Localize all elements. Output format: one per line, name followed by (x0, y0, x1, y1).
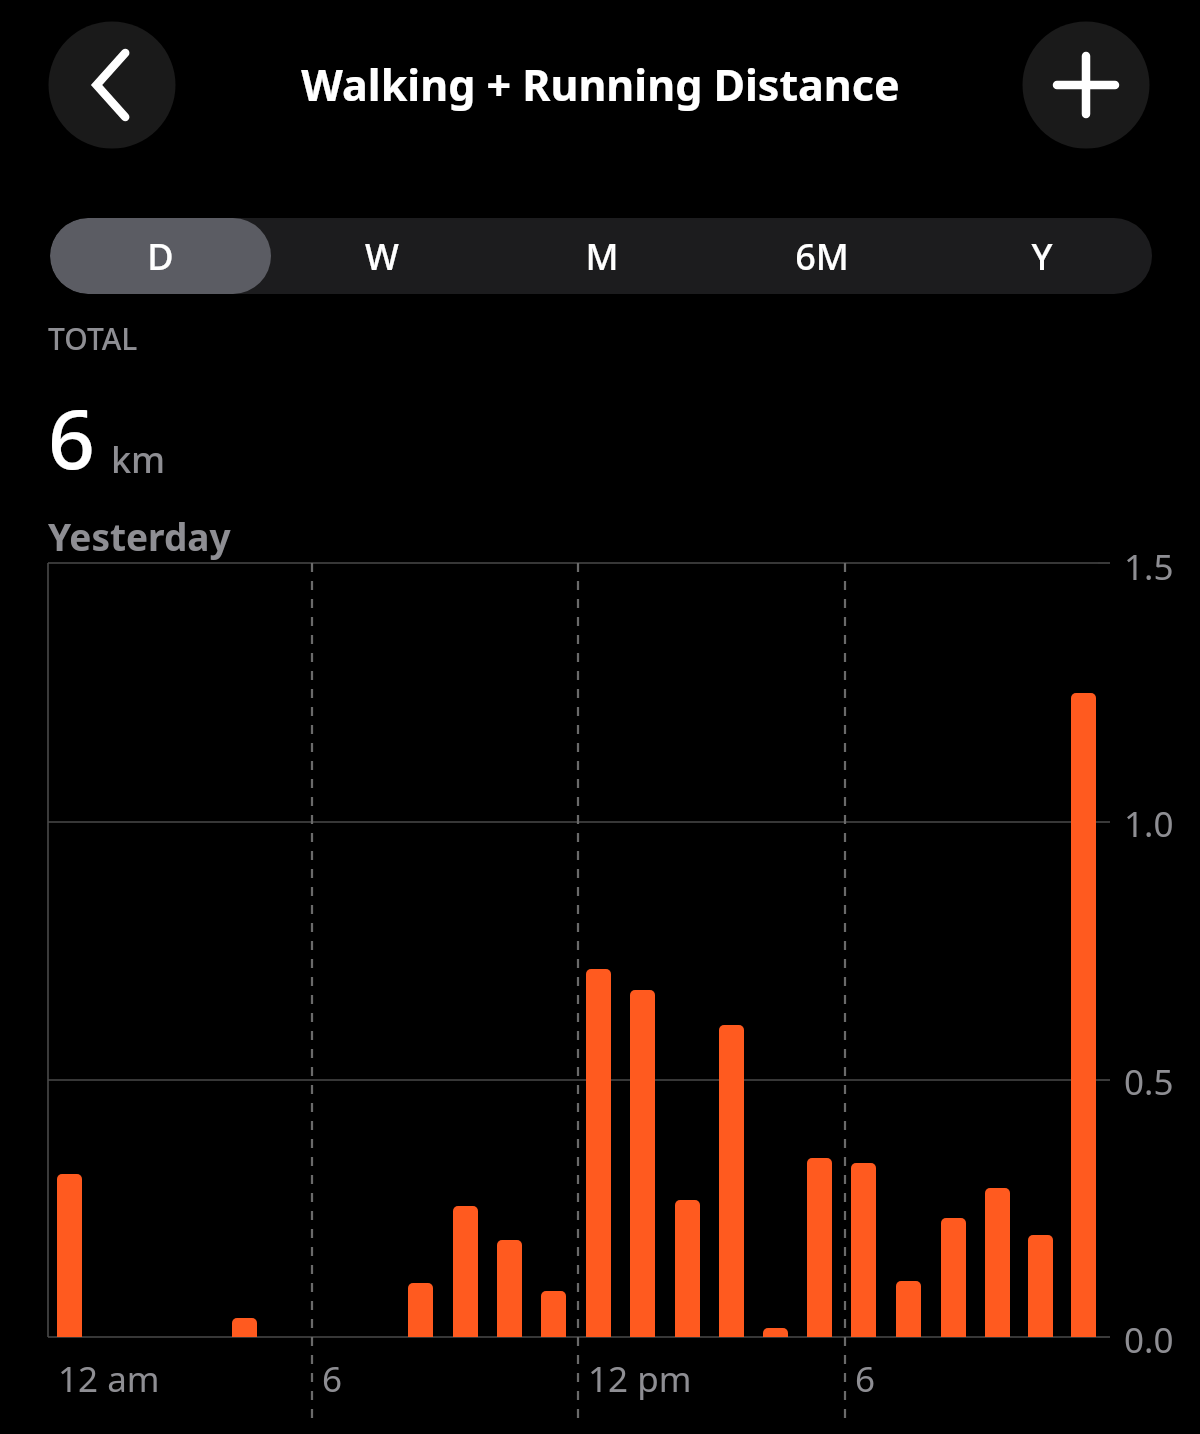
button[interactable]: Y (932, 218, 1152, 294)
staticText: 6 (322, 1355, 343, 1403)
button[interactable]: D (50, 218, 271, 294)
button[interactable]: 6M (712, 218, 932, 294)
staticText: M (585, 232, 619, 281)
staticText: 1.5 (1124, 543, 1174, 591)
staticText: 6M (795, 232, 849, 281)
staticText: TOTAL (48, 318, 138, 359)
staticText: Yesterday (48, 511, 231, 561)
staticText: 6 (855, 1355, 876, 1403)
staticText: Walking + Running Distance (301, 55, 900, 114)
staticText: 12 pm (588, 1355, 692, 1403)
staticText: km (111, 435, 166, 484)
staticText: 0.0 (1124, 1316, 1174, 1364)
staticText: D (147, 232, 174, 281)
button[interactable]: Back (48, 21, 176, 149)
staticText: 0.5 (1124, 1058, 1174, 1106)
staticText: 1.0 (1124, 800, 1174, 848)
staticText: 6 (48, 381, 95, 493)
staticText: Y (1031, 232, 1053, 281)
button[interactable]: M (492, 218, 712, 294)
staticText: 12 am (58, 1355, 160, 1403)
staticText: W (365, 232, 399, 281)
button[interactable]: Add (1022, 21, 1150, 149)
button[interactable]: W (271, 218, 492, 294)
